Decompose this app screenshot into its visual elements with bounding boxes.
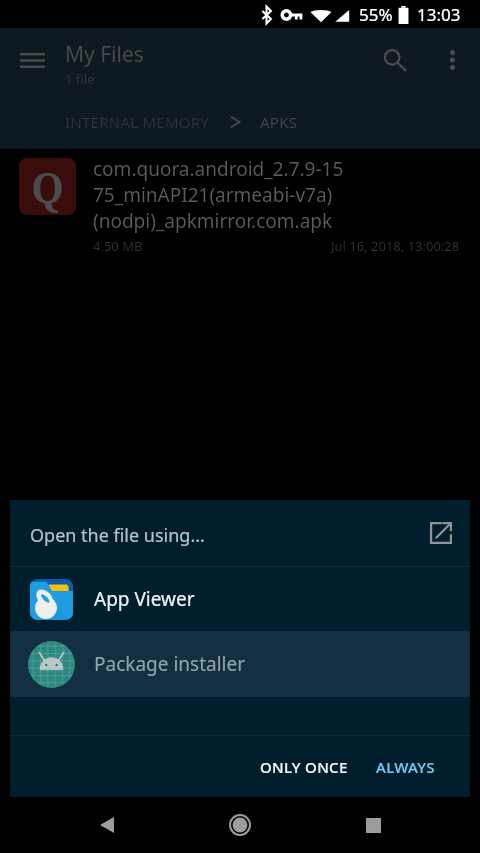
button[interactable]: Q <box>0 149 480 259</box>
button[interactable]: Recent apps <box>349 801 397 849</box>
staticText: 13:03 <box>417 3 461 26</box>
staticText: ONLY ONCE <box>260 757 348 777</box>
button[interactable]: Home <box>216 801 264 849</box>
staticText: INTERNAL MEMORY <box>65 112 210 132</box>
staticText: App Viewer <box>94 586 195 612</box>
staticText: Jul 16, 2018, 13:00:28 <box>331 237 460 255</box>
staticText: My Files <box>65 40 144 69</box>
button[interactable]: Search <box>371 36 419 84</box>
button[interactable]: ALWAYS <box>362 747 449 787</box>
button[interactable]: Open in new window <box>424 516 458 550</box>
staticText: 1 file <box>65 70 95 88</box>
staticText: APKS <box>260 112 298 132</box>
staticText: Package installer <box>94 651 246 677</box>
button[interactable]: ONLY ONCE <box>246 747 362 787</box>
button[interactable]: Package installer <box>10 631 470 697</box>
button[interactable]: More options <box>428 36 476 84</box>
staticText: Q <box>31 158 65 215</box>
staticText: 55% <box>359 3 393 26</box>
staticText: 4.50 MB <box>93 237 143 255</box>
staticText: Open the file using… <box>30 523 205 548</box>
button[interactable]: Back <box>83 801 131 849</box>
staticText: (nodpi)_apkmirror.com.apk <box>93 208 333 234</box>
staticText: ALWAYS <box>376 757 435 777</box>
button[interactable]: Open navigation drawer <box>20 53 45 68</box>
staticText: com.quora.android_2.7.9-15 <box>93 156 344 182</box>
staticText: 75_minAPI21(armeabi-v7a) <box>93 182 333 208</box>
button[interactable]: App Viewer <box>10 567 470 631</box>
